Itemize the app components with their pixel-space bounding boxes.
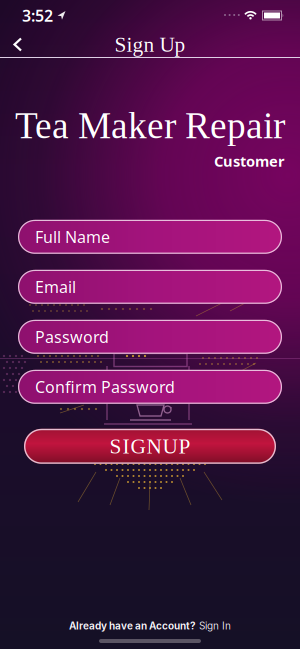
staticText: Email [35, 276, 76, 297]
staticText: Customer [214, 151, 285, 171]
button[interactable]: SIGNUP [24, 429, 276, 464]
staticText: Password [35, 326, 109, 347]
staticText: Tea Maker Repair [15, 105, 285, 146]
button[interactable]: Password [18, 320, 282, 354]
staticText: Already have an Account? [69, 620, 196, 632]
button[interactable]: Back [0, 31, 23, 57]
staticText: Confirm Password [35, 376, 175, 397]
button[interactable]: Confirm Password [18, 370, 282, 404]
staticText: Sign Up [114, 33, 185, 56]
staticText: 3:52 [22, 5, 53, 26]
button[interactable]: Full Name [18, 220, 282, 254]
staticText: Sign In [199, 620, 231, 632]
staticText: SIGNUP [109, 434, 190, 458]
button[interactable]: Already have an Account? [69, 620, 231, 632]
button[interactable]: Email [18, 270, 282, 304]
staticText: Full Name [35, 226, 110, 247]
